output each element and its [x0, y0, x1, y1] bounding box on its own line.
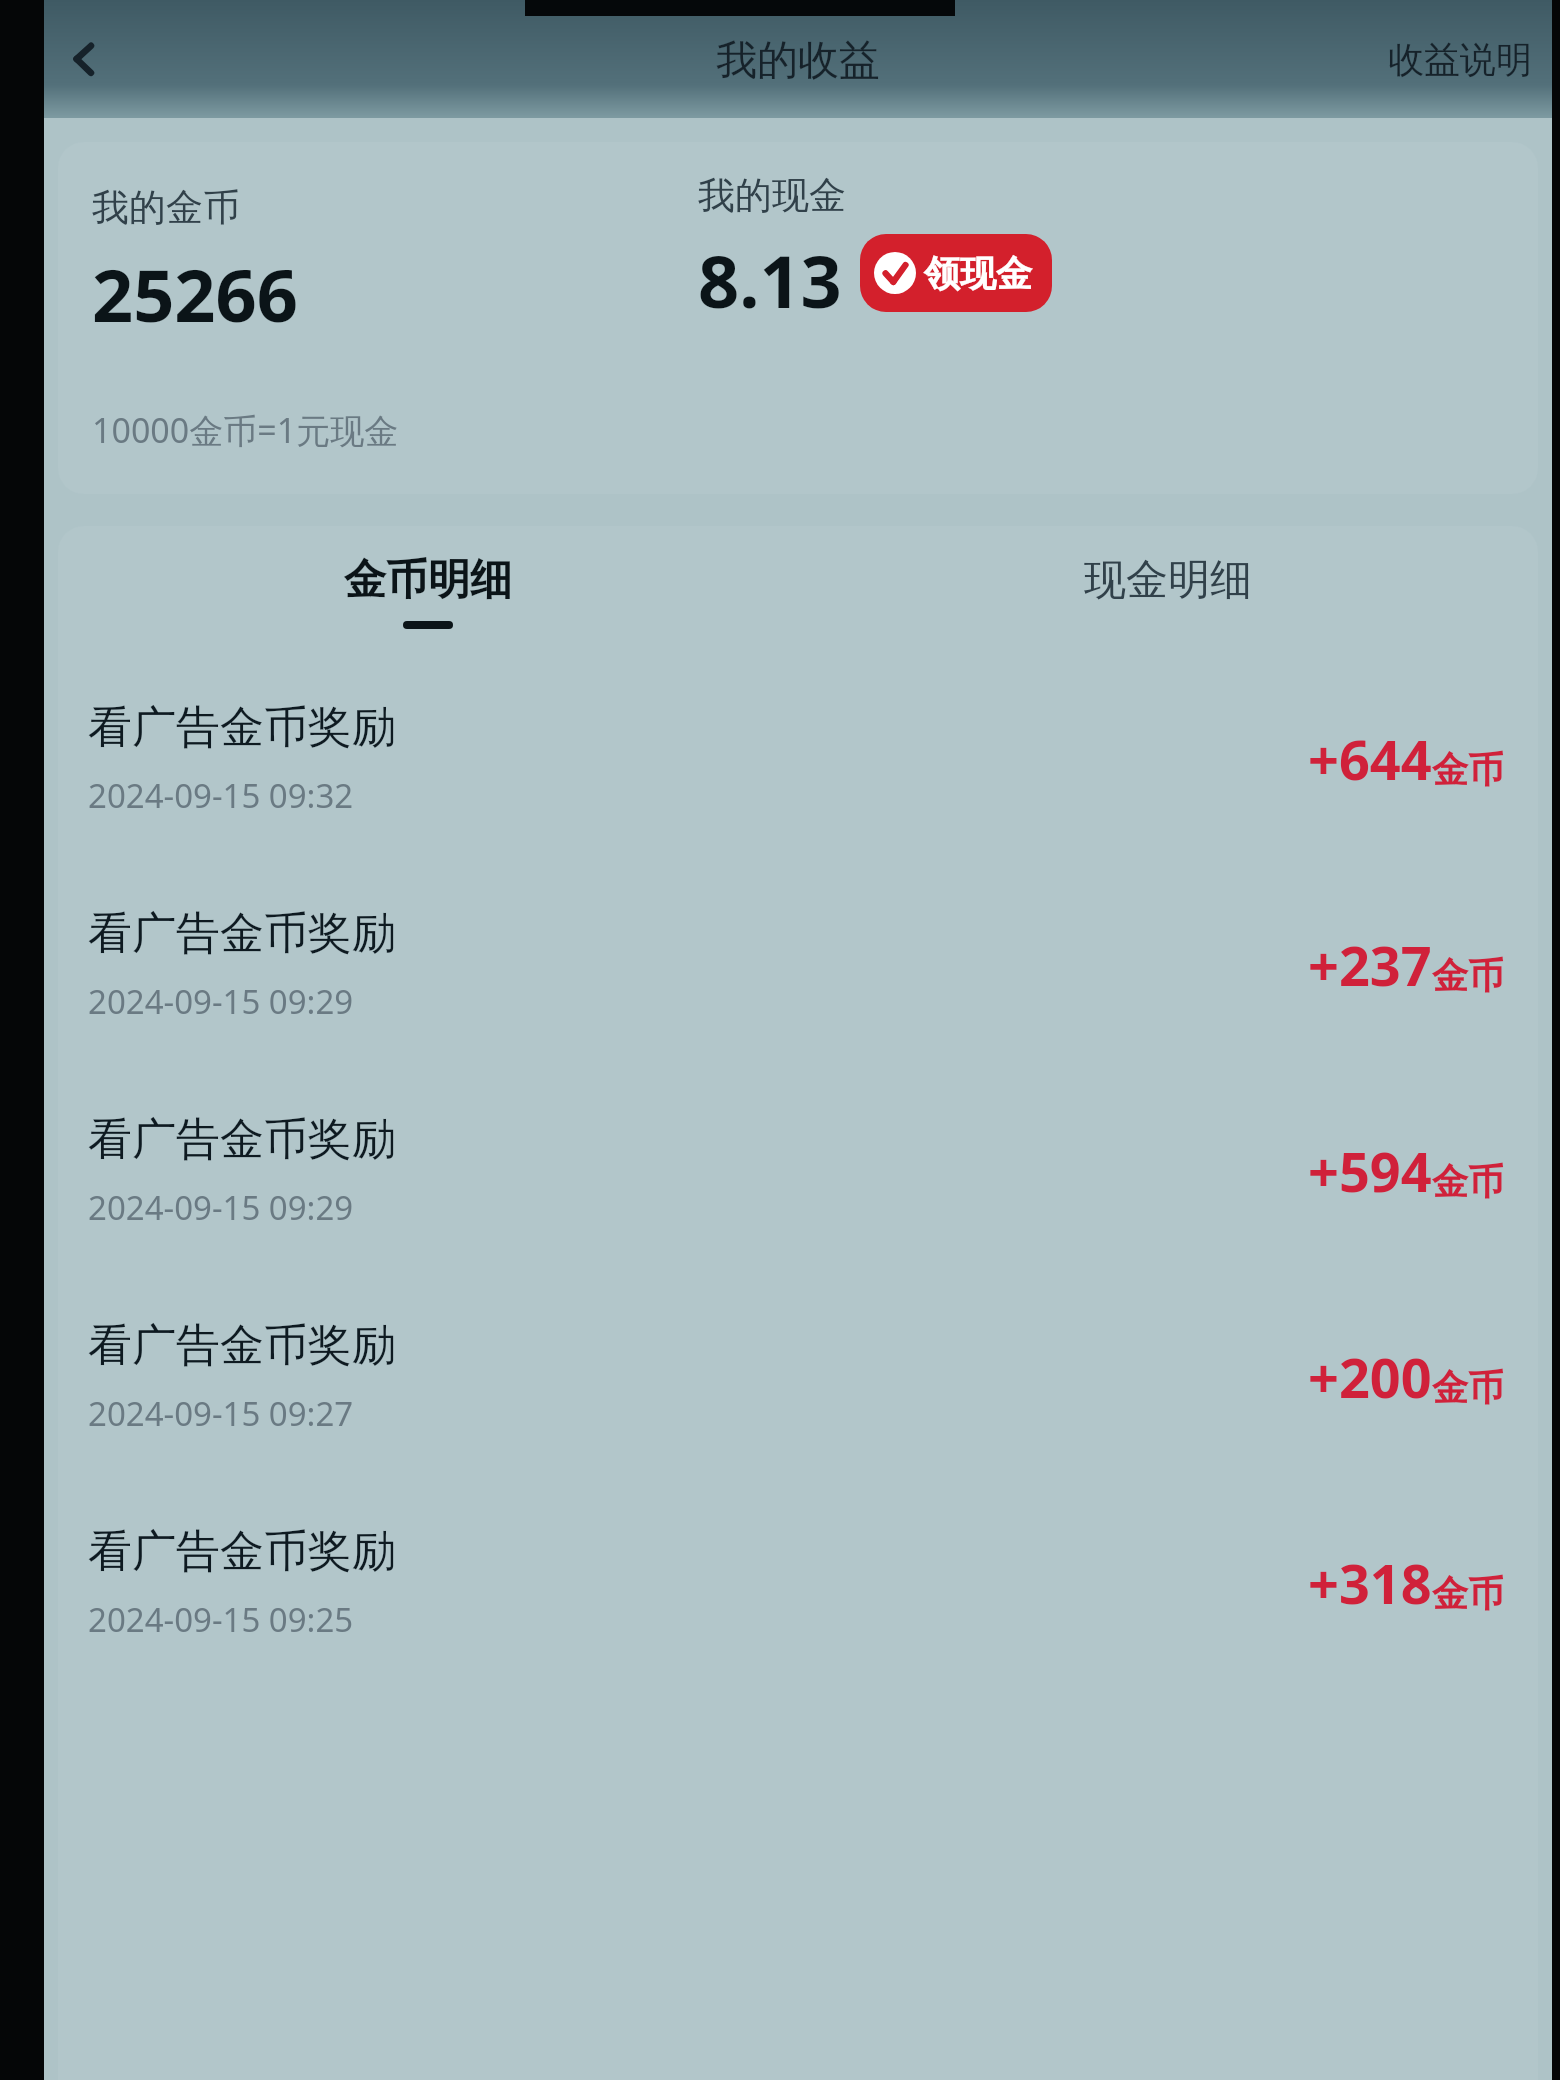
staticText: +594: [1308, 1134, 1432, 1208]
staticText: 金币: [1432, 1159, 1504, 1204]
staticText: 2024-09-15 09:25: [88, 1597, 354, 1642]
staticText: 收益说明: [1388, 37, 1532, 82]
staticText: 我的收益: [716, 35, 880, 87]
staticText: 我的现金: [698, 172, 846, 219]
staticText: 金币: [1432, 953, 1504, 998]
button[interactable]: 金币明细: [58, 526, 798, 656]
staticText: +200: [1308, 1340, 1432, 1414]
staticText: 领现金: [924, 251, 1032, 296]
staticText: 金币: [1432, 747, 1504, 792]
staticText: 金币明细: [344, 554, 512, 607]
staticText: 2024-09-15 09:29: [88, 979, 354, 1024]
staticText: +318: [1308, 1546, 1432, 1620]
button[interactable]: 现金明细: [798, 526, 1538, 656]
staticText: 2024-09-15 09:32: [88, 773, 354, 818]
staticText: 看广告金币奖励: [88, 1112, 396, 1167]
button[interactable]: 领现金: [860, 234, 1052, 312]
staticText: 8.13: [698, 231, 842, 329]
staticText: 金币: [1432, 1571, 1504, 1616]
button[interactable]: Back: [54, 28, 116, 90]
button[interactable]: 收益说明: [1382, 29, 1538, 90]
staticText: 看广告金币奖励: [88, 1318, 396, 1373]
button[interactable]: 看广告金币奖励: [58, 1068, 1538, 1274]
staticText: 我的金币: [92, 184, 240, 231]
button[interactable]: 看广告金币奖励: [58, 656, 1538, 862]
button[interactable]: 看广告金币奖励: [58, 1274, 1538, 1480]
staticText: 看广告金币奖励: [88, 906, 396, 961]
staticText: 看广告金币奖励: [88, 700, 396, 755]
button[interactable]: 看广告金币奖励: [58, 1480, 1538, 1686]
staticText: 看广告金币奖励: [88, 1524, 396, 1579]
staticText: +644: [1308, 722, 1432, 796]
staticText: 10000金币=1元现金: [92, 407, 399, 453]
staticText: 2024-09-15 09:29: [88, 1185, 354, 1230]
staticText: 25266: [92, 245, 298, 343]
staticText: +237: [1308, 928, 1432, 1002]
button[interactable]: 看广告金币奖励: [58, 862, 1538, 1068]
staticText: 2024-09-15 09:27: [88, 1391, 354, 1436]
staticText: 金币: [1432, 1365, 1504, 1410]
staticText: 现金明细: [1084, 554, 1252, 607]
